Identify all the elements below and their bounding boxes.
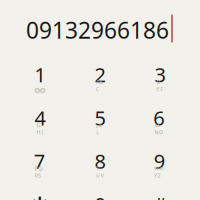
button[interactable]: 3 bbox=[130, 56, 190, 99]
staticText: 5 bbox=[94, 104, 105, 131]
staticText: WXYZ bbox=[154, 165, 164, 179]
button[interactable]: 5 bbox=[70, 99, 130, 142]
button[interactable]: 7 bbox=[10, 142, 70, 186]
staticText: 09132966186 bbox=[26, 15, 169, 45]
staticText: PQRS bbox=[34, 165, 44, 179]
staticText: 6 bbox=[153, 104, 164, 131]
button[interactable]: 9 bbox=[130, 142, 190, 186]
button[interactable]: 8 bbox=[70, 142, 130, 186]
button[interactable]: 2 bbox=[70, 56, 130, 99]
staticText: 3 bbox=[154, 61, 165, 88]
button[interactable]: 1 bbox=[10, 56, 70, 99]
staticText: GHI bbox=[37, 122, 43, 136]
button[interactable]: # bbox=[130, 186, 190, 200]
staticText: MNO bbox=[154, 122, 163, 136]
staticText: 7 bbox=[34, 148, 45, 174]
staticText: DEF bbox=[157, 78, 163, 93]
staticText: ABC bbox=[96, 78, 104, 93]
staticText: 8 bbox=[94, 148, 105, 174]
staticText: 0 bbox=[94, 191, 105, 200]
button[interactable]: ✲ bbox=[10, 186, 70, 200]
staticText: 1 bbox=[34, 61, 45, 88]
button[interactable]: 0 bbox=[70, 186, 130, 200]
staticText: ✲ bbox=[31, 193, 48, 200]
staticText: TUV bbox=[96, 165, 104, 179]
staticText: 4 bbox=[34, 104, 45, 131]
staticText: # bbox=[153, 191, 166, 200]
staticText: 2 bbox=[94, 61, 105, 88]
button[interactable]: 6 bbox=[130, 99, 190, 142]
button[interactable]: 4 bbox=[10, 99, 70, 142]
staticText: JKL bbox=[96, 122, 104, 136]
staticText: 9 bbox=[154, 148, 165, 174]
